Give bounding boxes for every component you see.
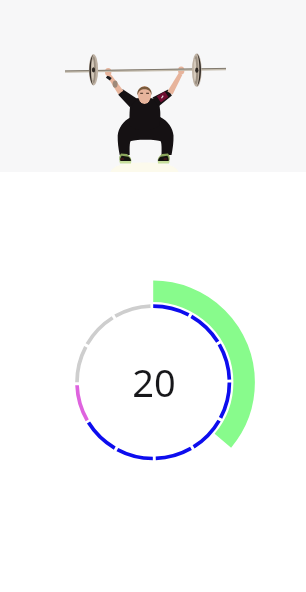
staticText: 20 [132,356,176,408]
button[interactable]: Exercise illustration [0,0,306,172]
